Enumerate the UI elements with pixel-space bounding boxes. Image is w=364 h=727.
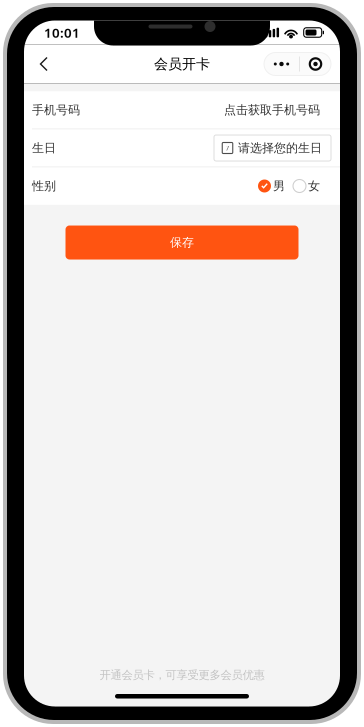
staticText: 生日 — [32, 140, 56, 155]
button[interactable]: 手机号码 — [24, 91, 340, 128]
staticText: 点击获取手机号码 — [224, 102, 320, 117]
staticText: 开通会员卡，可享受更多会员优惠 — [99, 668, 264, 682]
button[interactable]: 7 — [214, 135, 331, 161]
staticText: 会员开卡 — [154, 55, 210, 73]
staticText: 手机号码 — [32, 102, 80, 117]
button[interactable]: Back — [31, 44, 57, 83]
button[interactable]: 女 — [285, 178, 320, 193]
button[interactable]: 保存 — [65, 225, 298, 259]
staticText: 10:01 — [44, 23, 80, 42]
button[interactable]: More options — [264, 52, 331, 75]
staticText: 性别 — [32, 178, 56, 193]
button[interactable]: 男 — [258, 178, 285, 193]
staticText: 请选择您的生日 — [238, 140, 322, 155]
staticText: 男 — [273, 178, 285, 193]
staticText: 7 — [225, 143, 229, 153]
staticText: 保存 — [170, 235, 194, 250]
staticText: 女 — [308, 178, 320, 193]
